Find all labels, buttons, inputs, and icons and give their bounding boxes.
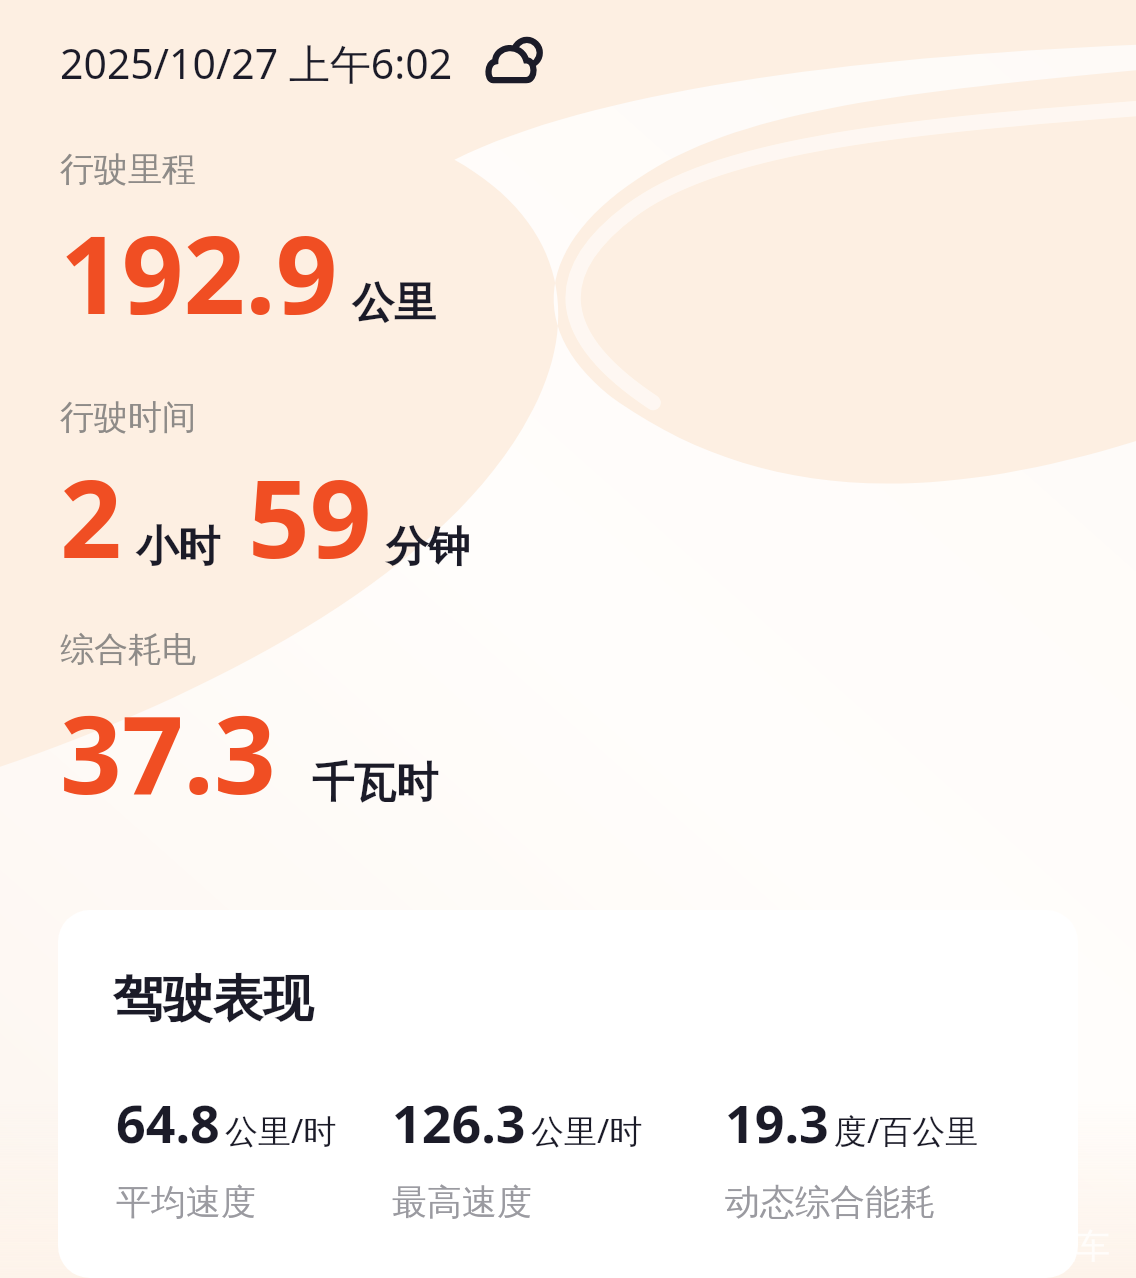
button[interactable]: 126.3: [392, 1087, 725, 1224]
staticText: 公里: [352, 277, 436, 330]
staticText: 驾驶表现: [113, 968, 313, 1031]
staticText: 2: [60, 443, 122, 590]
staticText: 小米汽车: [974, 1225, 1110, 1268]
staticText: 小时: [136, 521, 220, 574]
staticText: 动态综合能耗: [725, 1180, 935, 1224]
staticText: 19.3: [725, 1087, 829, 1158]
staticText: 最高速度: [392, 1180, 532, 1224]
staticText: 千瓦时: [312, 757, 438, 810]
button[interactable]: 驾驶表现: [58, 910, 1078, 1278]
staticText: 126.3: [392, 1087, 526, 1158]
staticText: 行驶时间: [60, 396, 196, 439]
button[interactable]: 64.8: [116, 1087, 392, 1224]
staticText: 37.3: [60, 679, 276, 826]
staticText: 公里/时: [531, 1108, 643, 1153]
staticText: 公里/时: [225, 1108, 337, 1153]
staticText: 度/百公里: [834, 1108, 979, 1153]
staticText: 2025/10/27 上午6:02: [60, 35, 453, 91]
staticText: 64.8: [116, 1087, 220, 1158]
staticText: 192.9: [60, 199, 338, 346]
staticText: 分钟: [386, 521, 470, 574]
other: Weather: cloudy: [483, 30, 549, 96]
button[interactable]: 2025/10/27 上午6:02: [60, 30, 549, 96]
staticText: 59: [248, 443, 372, 590]
staticText: 平均速度: [116, 1180, 256, 1224]
button[interactable]: 19.3: [725, 1087, 1078, 1224]
staticText: 行驶里程: [60, 148, 196, 191]
staticText: 综合耗电: [60, 628, 196, 671]
